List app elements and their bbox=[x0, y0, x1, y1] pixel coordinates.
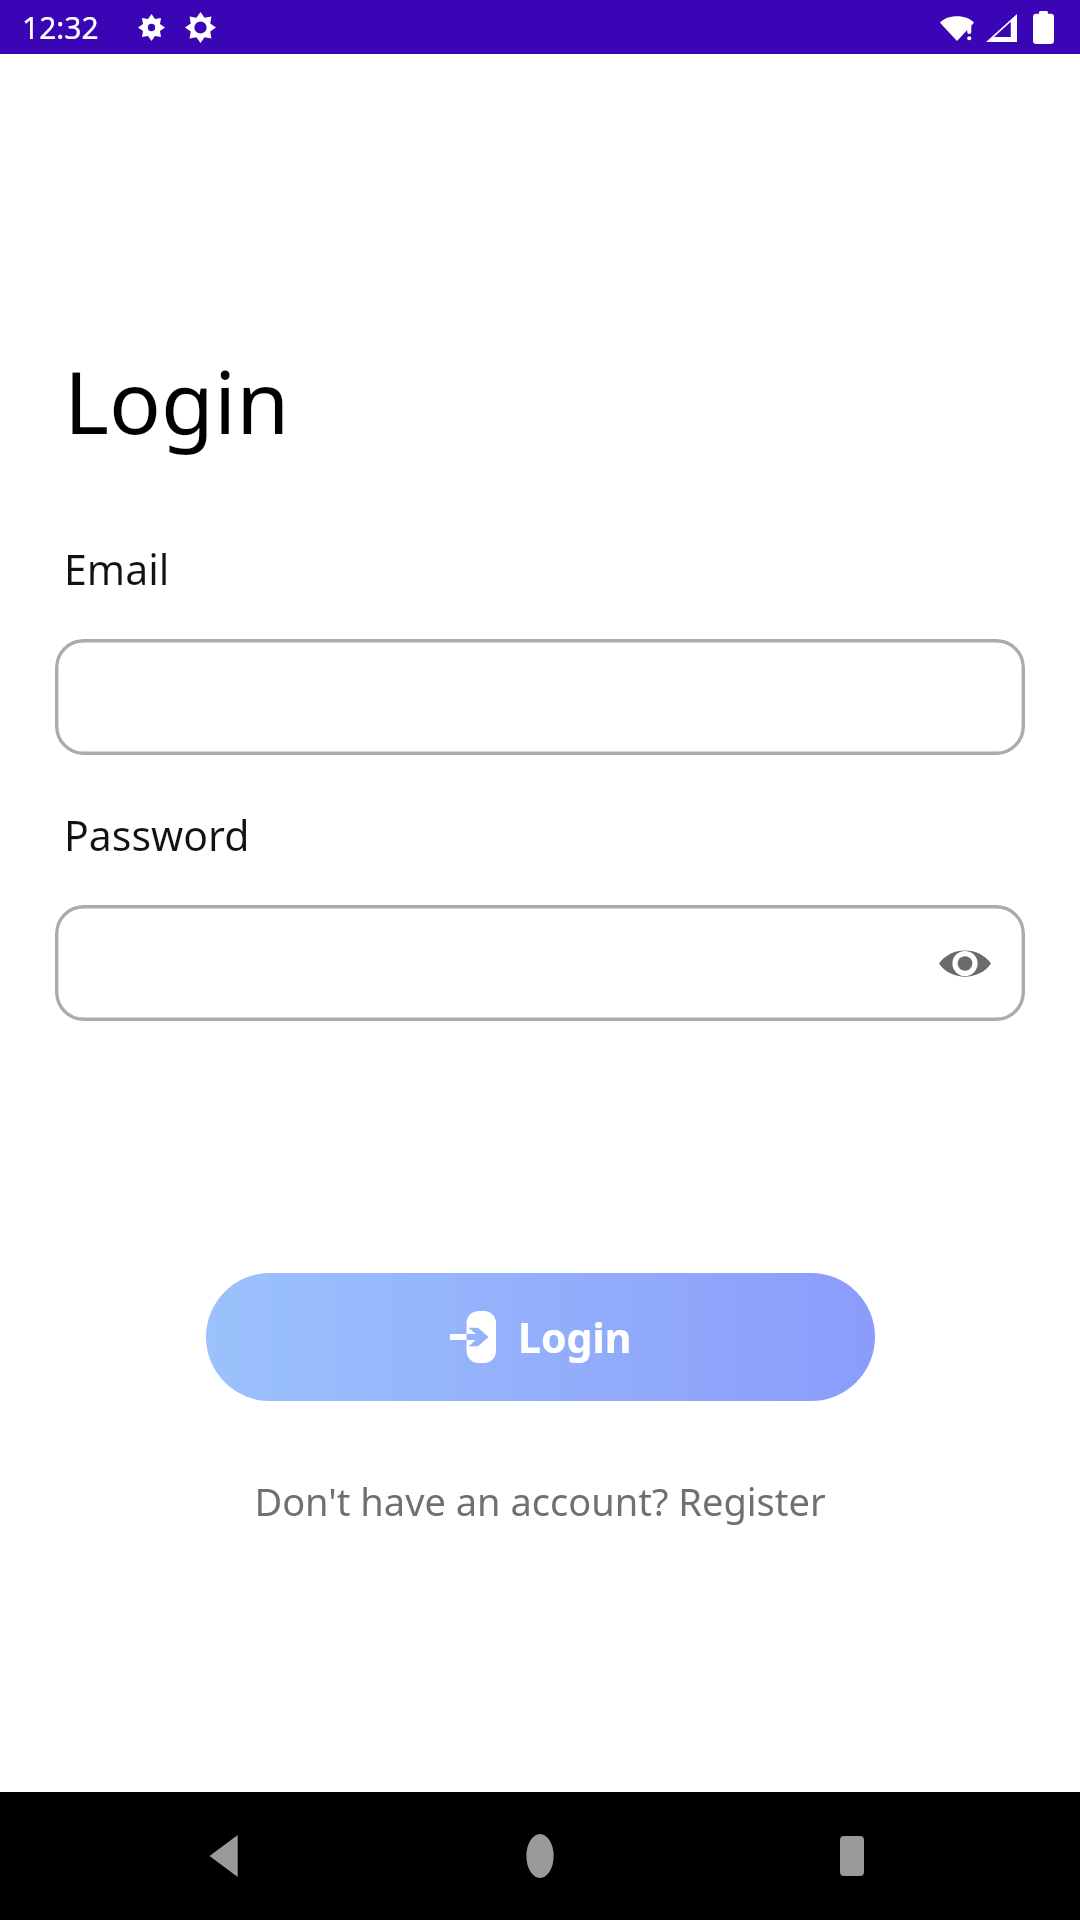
staticText: Login bbox=[518, 1309, 632, 1365]
button[interactable]: Recents bbox=[809, 1813, 895, 1899]
staticText: Email bbox=[64, 541, 170, 597]
button[interactable]: Login bbox=[206, 1273, 875, 1401]
button[interactable] bbox=[55, 639, 1025, 755]
button[interactable]: Show password bbox=[55, 905, 1025, 1021]
staticText: 12:32 bbox=[22, 7, 99, 48]
staticText: Login bbox=[64, 342, 290, 459]
button[interactable]: Show password bbox=[933, 931, 997, 995]
button[interactable]: Home bbox=[497, 1813, 583, 1899]
staticText: Password bbox=[64, 807, 250, 863]
button[interactable]: Back bbox=[185, 1813, 271, 1899]
button[interactable]: Don't have an account? Register bbox=[0, 1467, 1080, 1535]
